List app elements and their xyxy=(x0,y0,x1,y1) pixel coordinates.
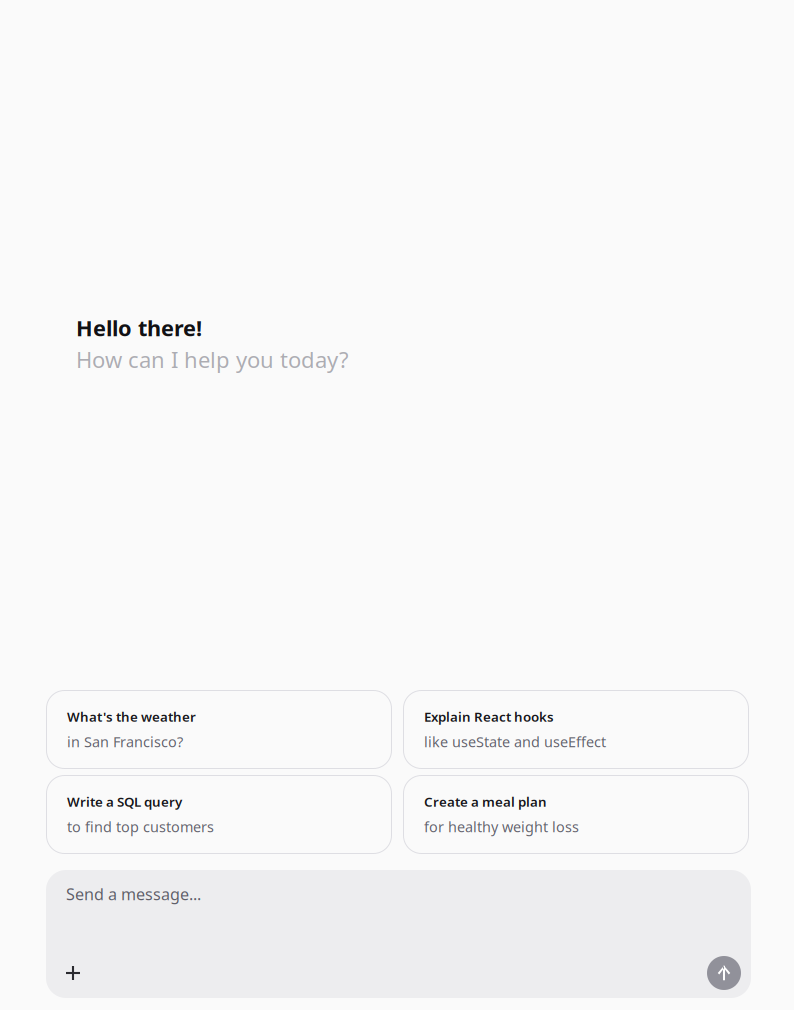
button[interactable]: What's the weather xyxy=(46,690,392,769)
staticText: in San Francisco? xyxy=(67,732,183,751)
staticText: Explain React hooks xyxy=(424,708,554,726)
staticText: like useState and useEffect xyxy=(424,732,606,751)
button[interactable]: Write a SQL query xyxy=(46,775,392,854)
staticText: to find top customers xyxy=(67,817,214,836)
staticText: Create a meal plan xyxy=(424,793,547,811)
staticText: Hello there! xyxy=(76,313,202,343)
button[interactable]: Add attachment xyxy=(58,958,88,988)
button[interactable]: Explain React hooks xyxy=(403,690,749,769)
staticText: What's the weather xyxy=(67,708,196,726)
button[interactable]: Create a meal plan xyxy=(403,775,749,854)
staticText: for healthy weight loss xyxy=(424,817,579,836)
staticText: How can I help you today? xyxy=(76,345,349,375)
staticText: Write a SQL query xyxy=(67,793,182,811)
staticText: Send a message... xyxy=(66,883,201,905)
button[interactable]: Send xyxy=(707,956,741,990)
